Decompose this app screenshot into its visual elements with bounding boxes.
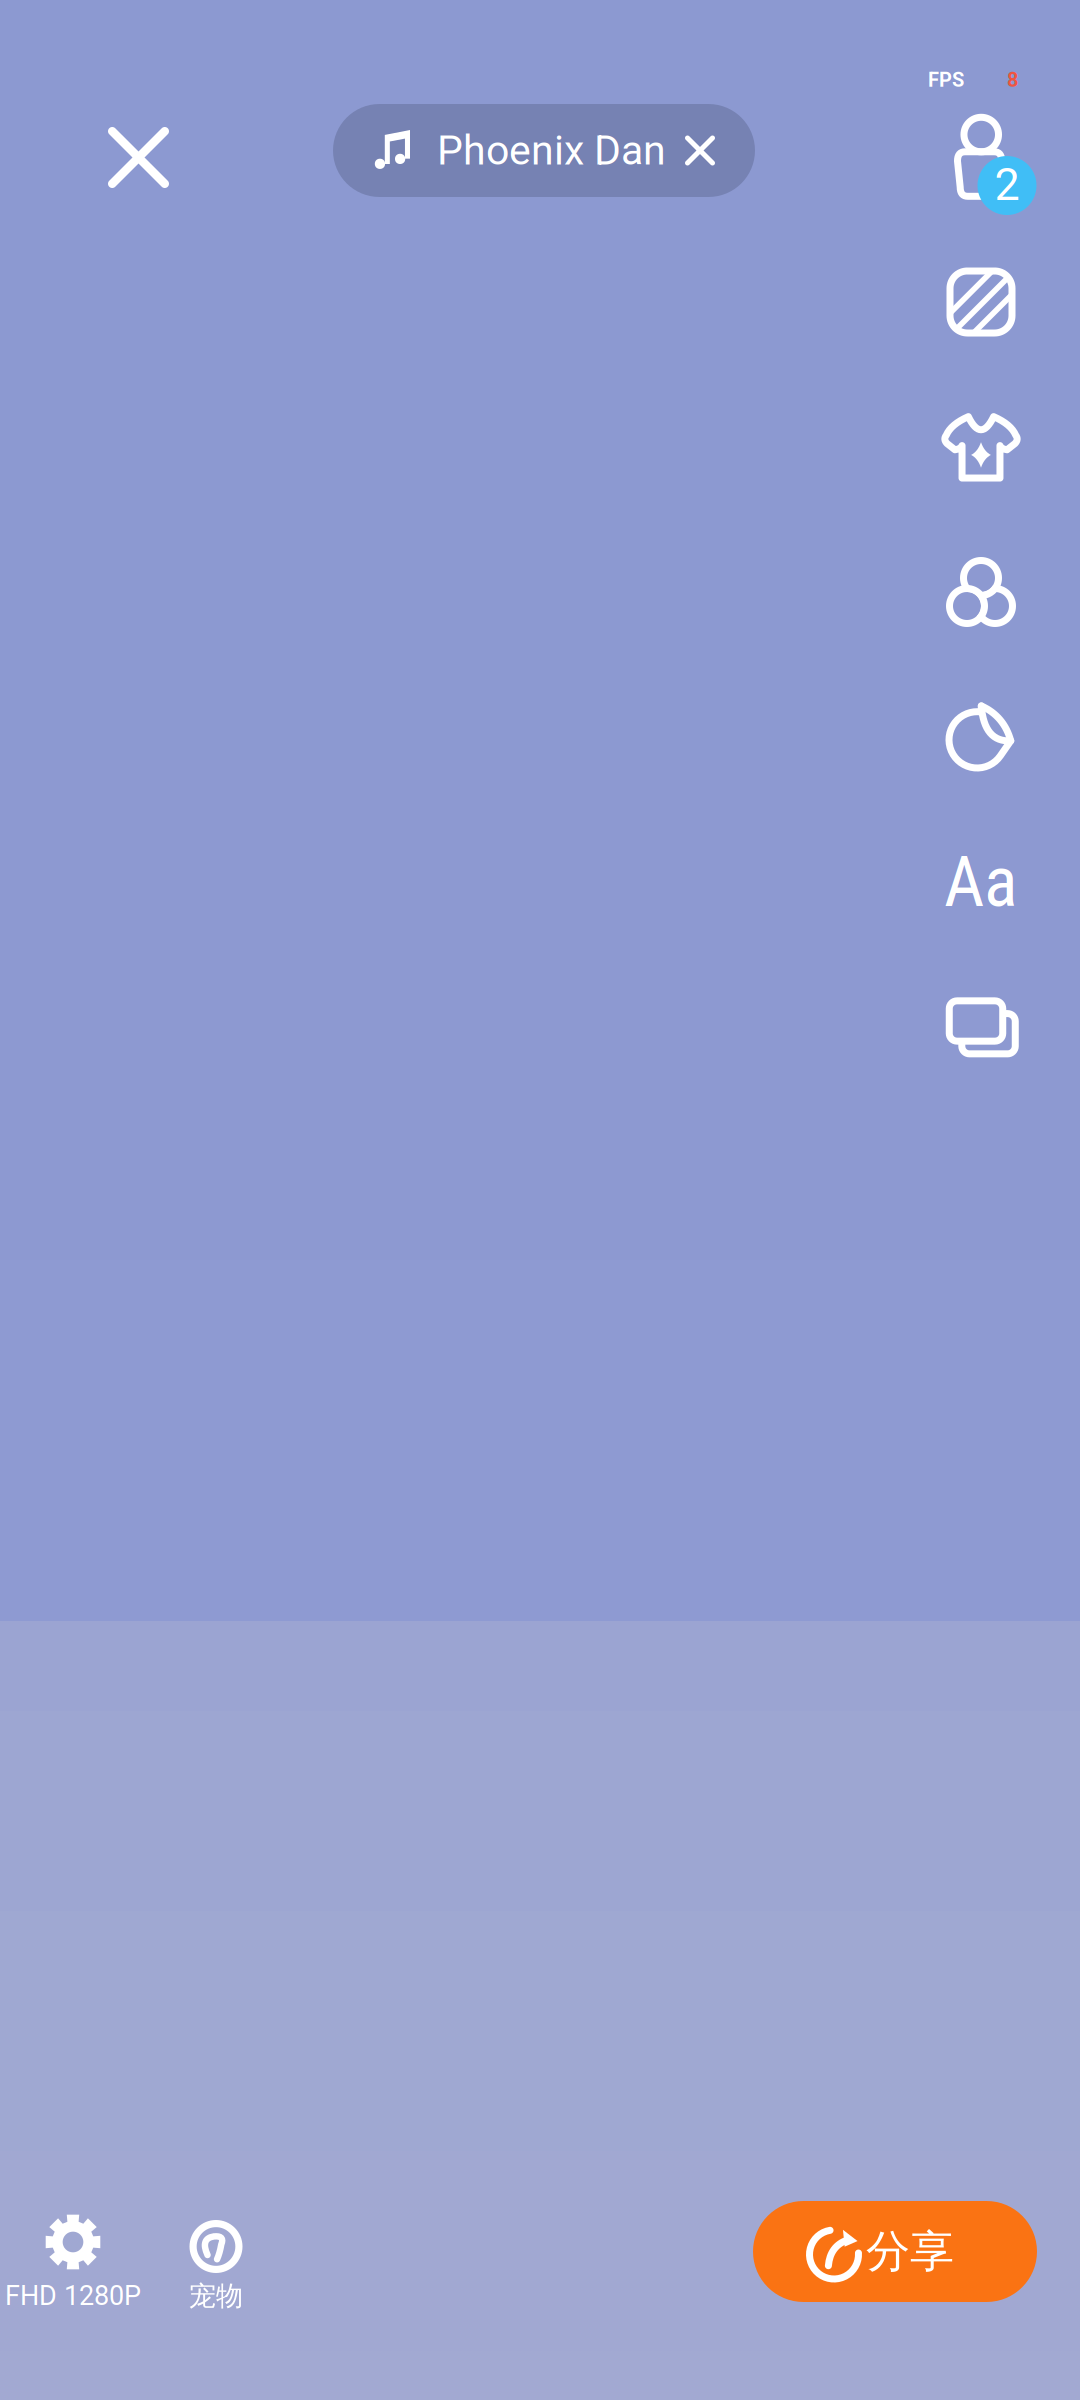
button[interactable]: 宠物: [181, 2220, 251, 2313]
button[interactable]: Participants: [909, 90, 1053, 234]
button[interactable]: Text style: [909, 810, 1053, 954]
staticText: FHD 1280P: [5, 2280, 141, 2312]
button[interactable]: Beauty: [909, 230, 1053, 374]
staticText: 2: [994, 158, 1019, 211]
staticText: FPS: [928, 68, 964, 92]
button[interactable]: 分享: [753, 2201, 1037, 2302]
staticText: 宠物: [189, 2279, 243, 2313]
button[interactable]: Phoenix Dan: [333, 104, 755, 197]
staticText: Aa: [944, 841, 1018, 923]
button[interactable]: Layers: [909, 955, 1053, 1099]
button[interactable]: Stickers: [909, 664, 1053, 808]
button[interactable]: FHD 1280P: [0, 2214, 149, 2312]
button[interactable]: Outfit: [909, 375, 1053, 519]
button[interactable]: Close: [76, 95, 201, 220]
staticText: Phoenix Dan: [437, 126, 666, 174]
staticText: 8: [1007, 68, 1018, 92]
button[interactable]: Filters: [909, 520, 1053, 664]
staticText: 分享: [866, 2224, 954, 2279]
